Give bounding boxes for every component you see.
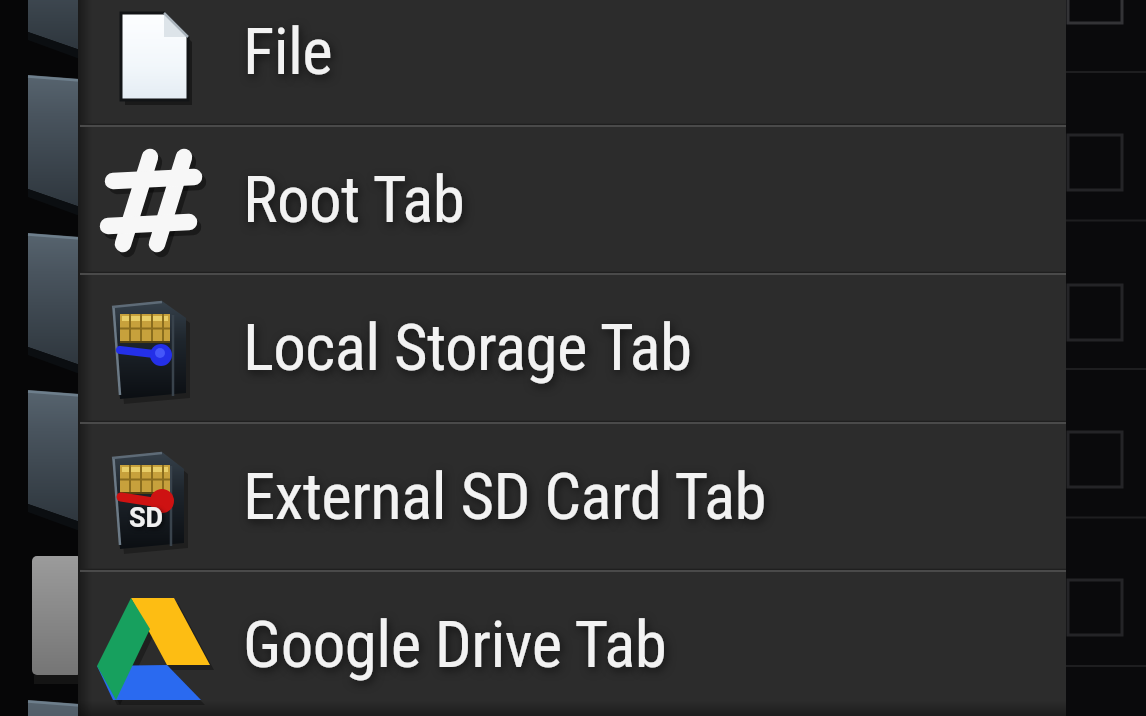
staticText: Root Tab <box>243 162 465 238</box>
staticText: Local Storage Tab <box>243 310 692 386</box>
staticText: Google Drive Tab <box>243 607 667 683</box>
staticText: File <box>243 14 333 90</box>
staticText: SD <box>129 502 164 534</box>
staticText: External SD Card Tab <box>243 459 767 535</box>
